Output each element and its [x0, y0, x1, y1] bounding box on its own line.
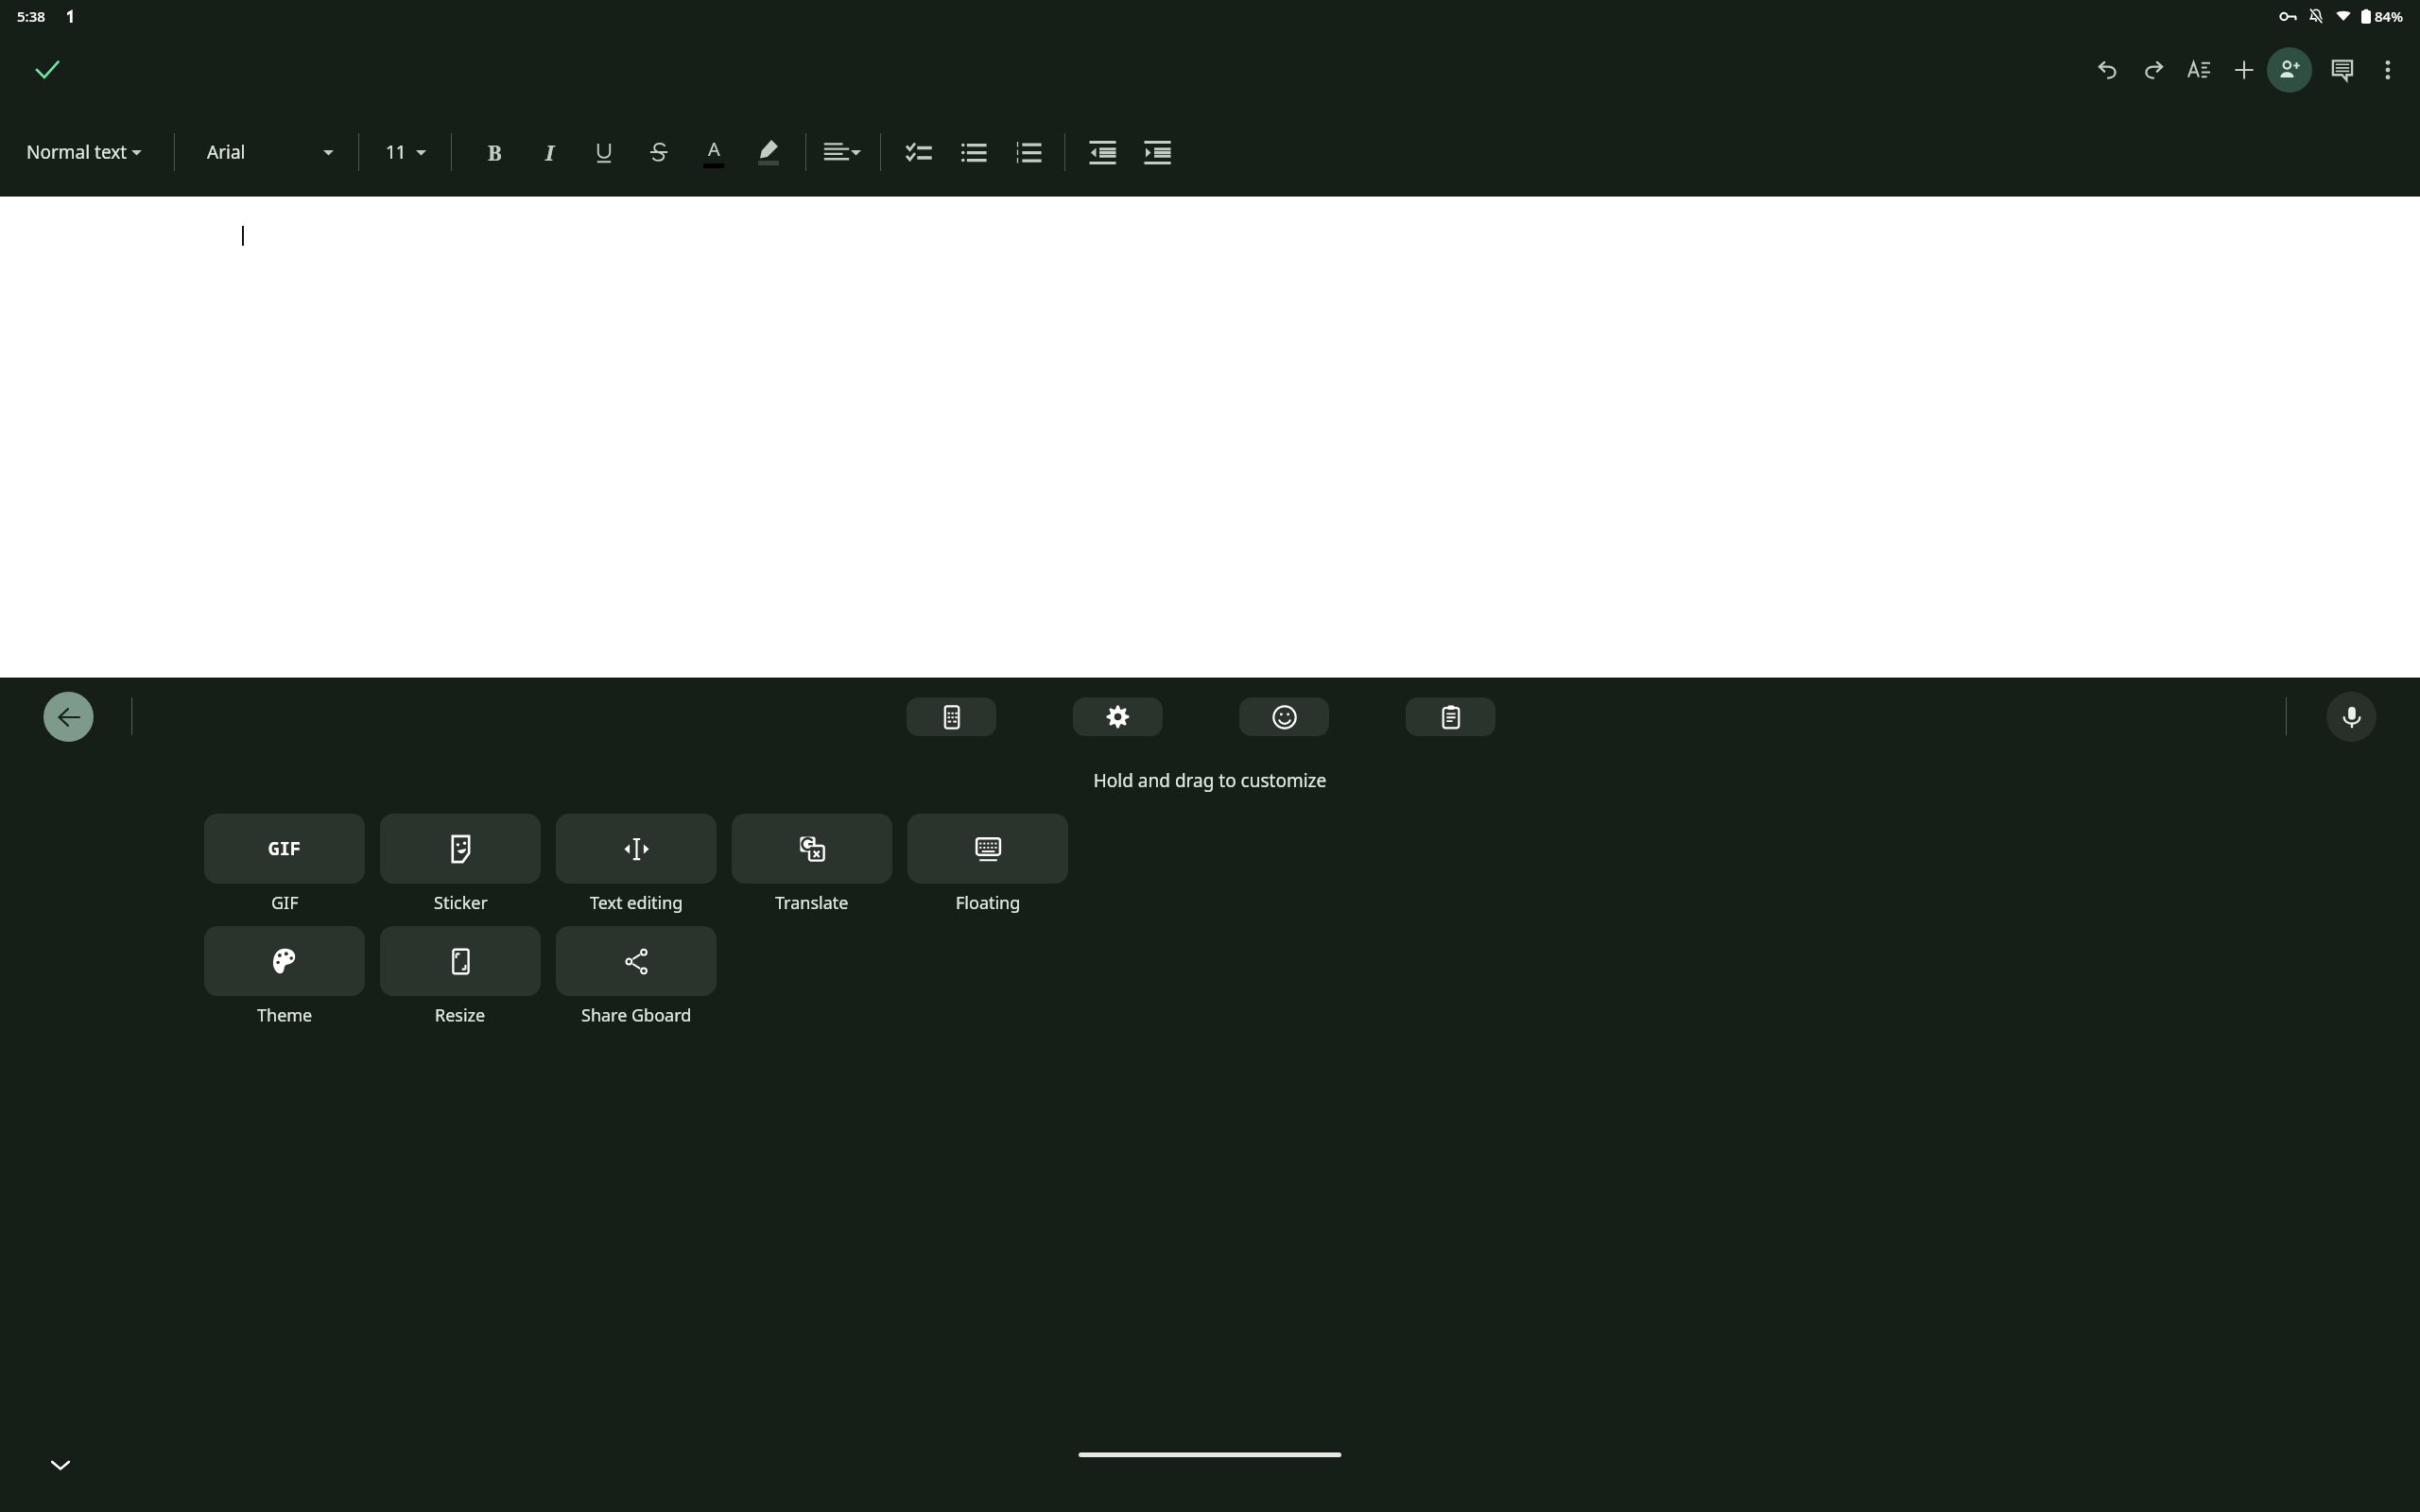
button[interactable]: Decrease indent [1075, 125, 1130, 180]
staticText: B [488, 138, 502, 166]
button[interactable]: Strikethrough [631, 125, 686, 180]
staticText: 5:38 [17, 7, 45, 26]
button[interactable]: Format [2176, 47, 2221, 93]
button[interactable]: Done [25, 47, 70, 93]
button[interactable]: Resize [380, 926, 541, 1027]
button[interactable]: Comments [2320, 47, 2365, 93]
button[interactable]: Text editing [556, 814, 717, 915]
staticText: Arial [207, 140, 246, 164]
button[interactable]: Text color [686, 125, 741, 180]
button[interactable]: Highlight color [741, 125, 796, 180]
button[interactable]: Underline [577, 125, 631, 180]
staticText: Text editing [590, 891, 683, 915]
button[interactable]: 11 [376, 126, 436, 179]
staticText: I [545, 138, 554, 166]
staticText: Floating [956, 891, 1021, 915]
staticText: 84% [2375, 7, 2403, 26]
button[interactable]: Insert [2221, 47, 2267, 93]
button[interactable]: Align [816, 126, 871, 179]
button[interactable]: Numbered list [1000, 125, 1055, 180]
button[interactable]: Checklist [890, 125, 945, 180]
staticText: Normal text [26, 140, 128, 164]
button[interactable]: Normal text [19, 126, 149, 179]
button[interactable]: More options [2365, 47, 2411, 93]
staticText: Hold and drag to customize [0, 768, 2420, 793]
button[interactable]: GIF [204, 814, 365, 915]
button[interactable]: Increase indent [1130, 125, 1184, 180]
button[interactable]: Theme [204, 926, 365, 1027]
staticText: Sticker [434, 891, 488, 915]
button[interactable]: Bulleted list [945, 125, 1000, 180]
button[interactable]: Italic [522, 125, 577, 180]
staticText: GIF [271, 891, 299, 915]
button[interactable]: Sticker [380, 814, 541, 915]
button[interactable]: Clipboard [1406, 697, 1495, 736]
button[interactable]: Collapse [40, 1444, 81, 1486]
button[interactable]: Settings [1073, 697, 1163, 736]
button[interactable]: Bold [467, 125, 522, 180]
staticText: Share Gboard [581, 1004, 692, 1027]
button[interactable]: Floating [907, 814, 1068, 915]
staticText: Theme [257, 1004, 313, 1027]
staticText: Translate [775, 891, 849, 915]
staticText: A [708, 136, 720, 162]
button[interactable]: Voice input [2326, 692, 2377, 742]
button[interactable]: Undo [2085, 47, 2131, 93]
button[interactable]: Redo [2131, 47, 2176, 93]
button[interactable]: Share Gboard [556, 926, 717, 1027]
button[interactable]: Emoji [1239, 697, 1329, 736]
staticText: GIF [268, 836, 302, 861]
staticText: 11 [386, 140, 406, 164]
button[interactable]: Back [43, 692, 94, 742]
button[interactable]: One-handed mode [907, 697, 996, 736]
button[interactable]: Arial [199, 126, 341, 179]
button[interactable]: Translate [732, 814, 892, 915]
button[interactable]: Share [2267, 47, 2312, 93]
staticText: Resize [435, 1004, 486, 1027]
